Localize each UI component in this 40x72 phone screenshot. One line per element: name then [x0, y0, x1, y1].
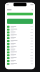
button[interactable]	[5, 60, 35, 62]
button[interactable]	[5, 51, 35, 54]
button[interactable]	[5, 42, 35, 45]
button[interactable]	[5, 48, 35, 51]
button[interactable]	[5, 62, 35, 65]
button[interactable]	[5, 25, 35, 28]
button[interactable]	[5, 57, 35, 60]
button[interactable]	[5, 28, 35, 31]
button[interactable]	[5, 31, 35, 34]
button[interactable]	[5, 37, 35, 40]
button[interactable]	[5, 54, 35, 57]
button[interactable]	[5, 34, 35, 37]
button[interactable]: Start	[7, 19, 33, 24]
button[interactable]	[5, 45, 35, 48]
button[interactable]	[5, 40, 35, 42]
